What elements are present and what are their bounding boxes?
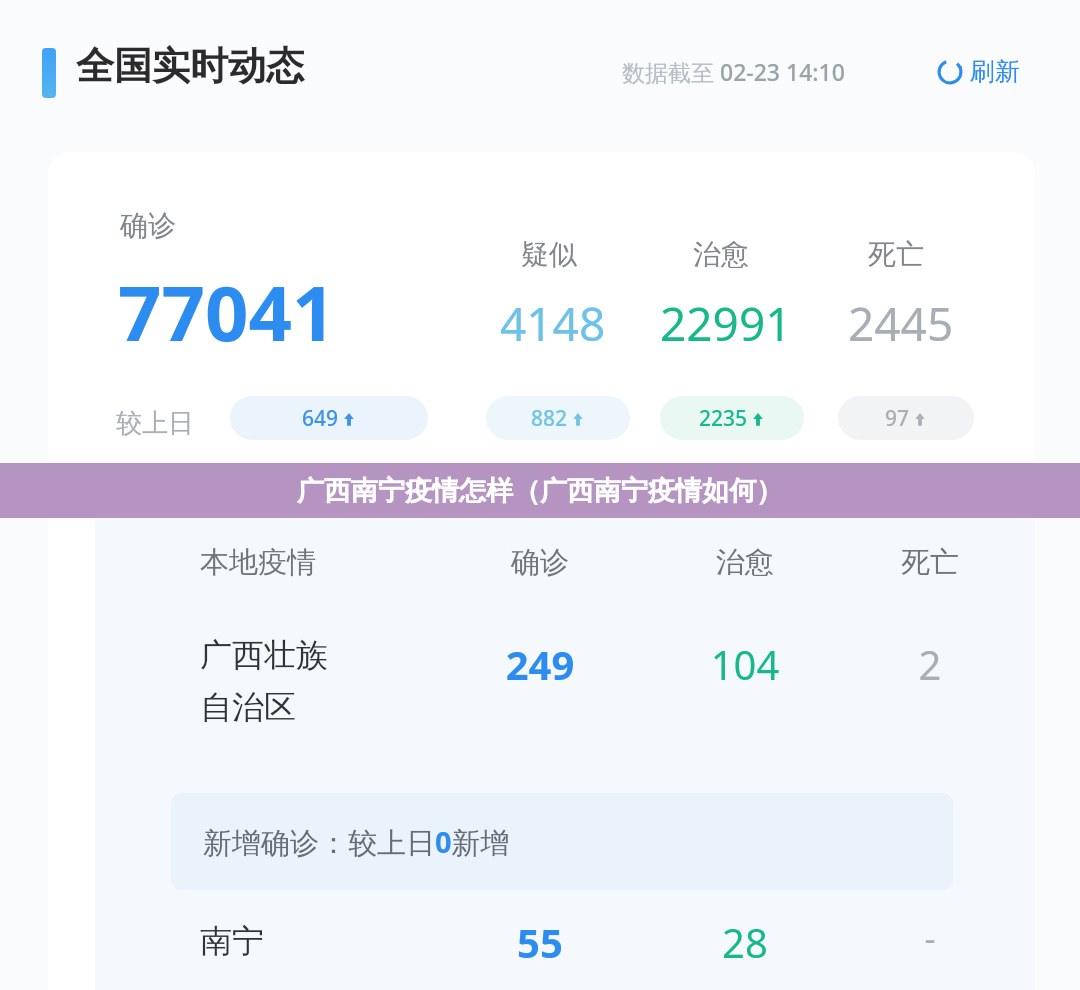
- staticText: 02-23 14:10: [720, 56, 845, 87]
- staticText: 新增确诊：较上日0新增: [203, 822, 510, 862]
- staticText: 治愈: [693, 237, 749, 272]
- staticText: 本地疫情: [200, 544, 316, 581]
- staticText: 死亡: [868, 237, 924, 272]
- button[interactable]: 新增确诊：较上日0新增: [171, 793, 953, 890]
- button[interactable]: 刷新: [934, 52, 1022, 91]
- staticText: 28: [685, 915, 805, 969]
- staticText: 确诊: [480, 544, 600, 581]
- staticText: 97: [885, 404, 910, 433]
- staticText: 全国实时动态: [76, 42, 304, 90]
- staticText: 刷新: [970, 56, 1020, 87]
- button[interactable]: 南宁: [95, 907, 1035, 990]
- staticText: 882: [531, 404, 568, 433]
- staticText: 55: [480, 915, 600, 969]
- staticText: 数据截至: [622, 56, 720, 87]
- button[interactable]: 649: [230, 396, 428, 440]
- staticText: 104: [685, 637, 805, 691]
- staticText: 4148: [500, 292, 606, 355]
- staticText: 249: [480, 637, 600, 691]
- button[interactable]: 882: [486, 396, 630, 440]
- staticText: 广西壮族: [200, 635, 328, 675]
- staticText: 死亡: [870, 544, 990, 581]
- staticText: 22991: [660, 292, 792, 355]
- staticText: 77041: [118, 260, 336, 364]
- staticText: 疑似: [521, 237, 577, 272]
- staticText: 较上日: [116, 407, 194, 440]
- staticText: 自治区: [200, 687, 296, 727]
- staticText: 2: [870, 637, 990, 691]
- staticText: 确诊: [120, 208, 176, 243]
- staticText: 649: [302, 404, 339, 433]
- staticText: 2445: [848, 292, 954, 355]
- staticText: -: [870, 915, 990, 961]
- staticText: 2235: [699, 404, 748, 433]
- button[interactable]: 97: [838, 396, 974, 440]
- staticText: 南宁: [200, 921, 264, 961]
- button[interactable]: 广西壮族: [95, 609, 1035, 779]
- staticText: 广西南宁疫情怎样（广西南宁疫情如何）: [297, 474, 783, 508]
- staticText: 治愈: [685, 544, 805, 581]
- button[interactable]: 2235: [660, 396, 804, 440]
